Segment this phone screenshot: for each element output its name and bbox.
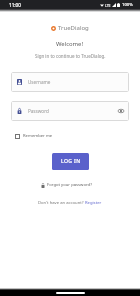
button[interactable]: Don't have an account? <box>38 200 102 206</box>
staticText: Username <box>28 79 51 85</box>
button[interactable]: Remember me <box>15 133 53 139</box>
staticText: TrueDialog <box>58 24 89 32</box>
button[interactable]: Forgot your password? <box>41 182 92 188</box>
staticText: Don't have an account? <box>38 200 85 206</box>
staticText: 100% <box>122 2 133 8</box>
staticText: Welcome! <box>56 40 84 48</box>
staticText: Sign in to continue to TrueDialog. <box>35 53 106 59</box>
staticText: Password <box>28 108 49 114</box>
staticText: Register <box>85 200 102 206</box>
staticText: Remember me <box>23 133 53 139</box>
other: Show password <box>118 109 124 113</box>
staticText: Forgot your password? <box>47 182 92 188</box>
button[interactable]: LOG IN <box>52 153 89 170</box>
staticText: 11:00 <box>9 2 21 8</box>
staticText: LTE <box>105 3 111 8</box>
button[interactable]: Username <box>11 72 129 92</box>
button[interactable]: Password <box>11 101 129 121</box>
staticText: LOG IN <box>61 158 81 165</box>
